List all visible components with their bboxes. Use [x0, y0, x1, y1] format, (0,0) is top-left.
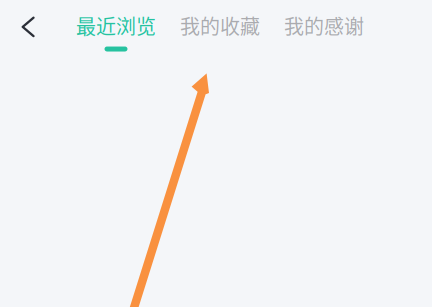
button[interactable]: Back	[8, 5, 48, 49]
button[interactable]: 我的收藏	[180, 11, 260, 55]
button[interactable]: 最近浏览	[76, 11, 156, 55]
staticText: 我的感谢	[284, 11, 364, 40]
staticText: 我的收藏	[180, 11, 260, 40]
button[interactable]: 我的感谢	[284, 11, 364, 55]
staticText: 最近浏览	[76, 11, 156, 40]
